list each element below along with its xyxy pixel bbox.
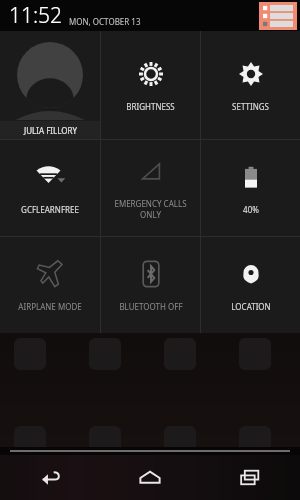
button[interactable]: GCFLEARNFREE bbox=[0, 140, 100, 236]
staticText: BLUETOOTH OFF bbox=[119, 301, 183, 312]
button[interactable]: 40% bbox=[201, 140, 300, 236]
staticText: AIRPLANE MODE bbox=[18, 301, 82, 312]
staticText: EMERGENCY CALLS ONLY bbox=[114, 198, 187, 220]
button[interactable]: JULIA FILLORY bbox=[0, 31, 100, 139]
staticText: BRIGHTNESS bbox=[126, 101, 175, 112]
button[interactable]: Quick settings toggle bbox=[259, 2, 297, 30]
button[interactable]: BRIGHTNESS bbox=[101, 31, 200, 139]
button[interactable]: Recents bbox=[200, 455, 300, 500]
button[interactable]: BLUETOOTH OFF bbox=[101, 237, 200, 333]
staticText: SETTINGS bbox=[232, 101, 269, 112]
staticText: JULIA FILLORY bbox=[24, 125, 77, 136]
staticText: MON, OCTOBER 13 bbox=[69, 16, 141, 27]
staticText: 11:52 bbox=[9, 1, 63, 30]
button[interactable]: LOCATION bbox=[201, 237, 300, 333]
button[interactable]: Back bbox=[0, 455, 100, 500]
button[interactable]: EMERGENCY CALLS ONLY bbox=[101, 140, 200, 236]
button[interactable]: SETTINGS bbox=[201, 31, 300, 139]
staticText: LOCATION bbox=[231, 301, 271, 312]
button[interactable]: AIRPLANE MODE bbox=[0, 237, 100, 333]
button[interactable]: Home bbox=[100, 455, 200, 500]
staticText: 40% bbox=[243, 204, 259, 215]
staticText: GCFLEARNFREE bbox=[21, 204, 79, 215]
